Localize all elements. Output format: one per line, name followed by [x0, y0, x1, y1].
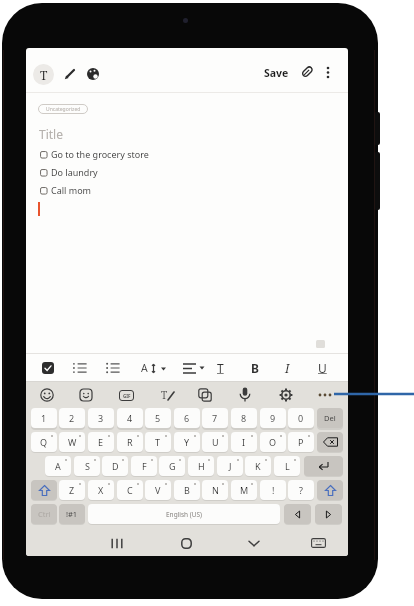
staticText: E — [98, 436, 104, 448]
staticText: B — [184, 484, 190, 496]
button[interactable]: 4 — [117, 408, 143, 428]
button[interactable]: ! — [260, 480, 286, 500]
button[interactable] — [40, 151, 48, 159]
button[interactable]: R — [117, 432, 143, 452]
button[interactable] — [73, 362, 87, 374]
button[interactable]: P — [288, 432, 314, 452]
button[interactable]: U — [202, 432, 228, 452]
button[interactable] — [198, 388, 212, 402]
button[interactable] — [181, 538, 192, 549]
button[interactable]: English (US) — [88, 504, 280, 524]
button[interactable]: 9 — [260, 408, 286, 428]
button[interactable]: T — [161, 388, 175, 402]
button[interactable]: Del — [317, 408, 343, 428]
button[interactable] — [279, 388, 293, 402]
staticText: Y — [184, 436, 190, 448]
button[interactable]: M — [231, 480, 257, 500]
staticText: G — [169, 460, 176, 472]
button[interactable]: 6 — [174, 408, 200, 428]
button[interactable] — [183, 362, 205, 375]
button[interactable]: Save — [264, 66, 289, 80]
button[interactable]: D — [102, 456, 128, 476]
staticText: T — [217, 360, 224, 376]
button[interactable] — [31, 480, 57, 500]
staticText: H — [198, 460, 205, 472]
button[interactable] — [300, 65, 314, 79]
button[interactable]: L — [274, 456, 300, 476]
button[interactable]: G — [159, 456, 185, 476]
button[interactable]: I — [231, 432, 257, 452]
button[interactable] — [40, 187, 48, 195]
button[interactable]: S — [74, 456, 100, 476]
staticText: U — [212, 436, 219, 448]
button[interactable] — [40, 169, 48, 177]
button[interactable] — [317, 432, 343, 452]
button[interactable]: T — [33, 64, 54, 85]
button[interactable] — [40, 388, 54, 402]
button[interactable]: 2 — [59, 408, 85, 428]
button[interactable] — [248, 540, 260, 547]
button[interactable]: 1 — [31, 408, 57, 428]
button[interactable]: H — [188, 456, 214, 476]
button[interactable]: C — [117, 480, 143, 500]
staticText: Do laundry — [51, 166, 98, 178]
staticText: U — [318, 360, 327, 376]
button[interactable]: K — [245, 456, 271, 476]
button[interactable]: 7 — [202, 408, 228, 428]
staticText: T — [161, 388, 168, 402]
button[interactable] — [284, 504, 311, 524]
button[interactable] — [63, 67, 77, 81]
button[interactable]: A — [45, 456, 71, 476]
staticText: C — [127, 484, 133, 496]
button[interactable]: !#1 — [59, 504, 85, 524]
button[interactable]: Q — [31, 432, 57, 452]
staticText: T — [40, 67, 48, 83]
button[interactable] — [325, 66, 331, 79]
button[interactable] — [304, 456, 343, 476]
button[interactable]: N — [202, 480, 228, 500]
button[interactable] — [152, 363, 168, 375]
button[interactable]: E — [88, 432, 114, 452]
staticText: Ctrl — [38, 509, 51, 519]
button[interactable] — [318, 393, 332, 397]
staticText: Title — [39, 126, 63, 142]
staticText: N — [212, 484, 219, 496]
button[interactable]: W — [59, 432, 85, 452]
staticText: B — [251, 360, 259, 376]
staticText: L — [285, 460, 290, 472]
button[interactable]: Z — [59, 480, 85, 500]
button[interactable] — [317, 480, 343, 500]
button[interactable]: X — [88, 480, 114, 500]
button[interactable] — [79, 388, 93, 402]
button[interactable] — [311, 538, 326, 548]
button[interactable]: B — [174, 480, 200, 500]
staticText: Go to the grocery store — [51, 148, 149, 160]
staticText: I — [285, 360, 290, 376]
button[interactable]: F — [131, 456, 157, 476]
staticText: 5 — [155, 412, 161, 424]
button[interactable] — [315, 504, 342, 524]
button[interactable] — [111, 538, 123, 549]
button[interactable]: O — [260, 432, 286, 452]
button[interactable]: Ctrl — [31, 504, 57, 524]
button[interactable] — [106, 362, 120, 374]
button[interactable]: V — [145, 480, 171, 500]
button[interactable]: T — [145, 432, 171, 452]
button[interactable] — [42, 362, 54, 374]
staticText: I — [242, 436, 246, 448]
staticText: X — [98, 484, 104, 496]
button[interactable] — [86, 67, 100, 81]
button[interactable]: Y — [174, 432, 200, 452]
button[interactable]: ? — [288, 480, 314, 500]
button[interactable]: J — [217, 456, 243, 476]
staticText: Del — [324, 413, 336, 423]
staticText: O — [269, 436, 277, 448]
button[interactable]: Uncategorized — [38, 104, 88, 114]
button[interactable]: 5 — [145, 408, 171, 428]
button[interactable]: 3 — [88, 408, 114, 428]
button[interactable]: GIF — [119, 390, 134, 401]
button[interactable]: 0 — [288, 408, 314, 428]
button[interactable]: 8 — [231, 408, 257, 428]
staticText: V — [155, 484, 161, 496]
button[interactable] — [239, 387, 251, 403]
